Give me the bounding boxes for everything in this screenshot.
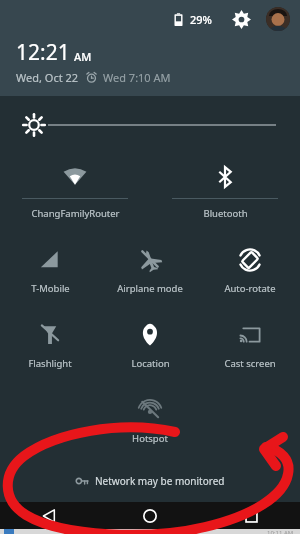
button[interactable]: Back xyxy=(36,503,62,529)
staticText: 12:21 xyxy=(16,38,70,67)
button[interactable]: Hotspot xyxy=(100,384,200,459)
staticText: Cast screen xyxy=(224,357,276,370)
button[interactable]: Auto-rotate xyxy=(200,234,300,309)
button[interactable]: Airplane mode xyxy=(100,234,200,309)
staticText: AM xyxy=(74,49,92,64)
button[interactable]: User profile xyxy=(266,7,290,31)
button[interactable]: Network may be monitored xyxy=(0,459,300,502)
staticText: Airplane mode xyxy=(117,282,183,295)
button[interactable]: Location xyxy=(100,309,200,384)
staticText: Flashlight xyxy=(28,357,72,370)
staticText: Network may be monitored xyxy=(95,474,225,488)
staticText: T-Mobile xyxy=(31,282,70,295)
button[interactable]: Home xyxy=(137,503,163,529)
button[interactable]: Cast screen xyxy=(200,309,300,384)
button[interactable]: ChangFamilyRouter xyxy=(0,154,150,234)
staticText: Bluetooth xyxy=(203,207,248,220)
staticText: Auto-rotate xyxy=(224,282,276,295)
staticText: 29% xyxy=(190,12,212,27)
button[interactable]: Flashlight xyxy=(0,309,100,384)
staticText: 10:11 AM xyxy=(267,529,294,534)
button[interactable]: T-Mobile xyxy=(0,234,100,309)
button[interactable]: Bluetooth xyxy=(150,154,300,234)
button[interactable]: Recent apps xyxy=(238,503,264,529)
staticText: Wed, Oct 22 xyxy=(16,70,79,85)
staticText: ChangFamilyRouter xyxy=(31,207,120,220)
staticText: Location xyxy=(131,357,170,370)
button[interactable]: Settings xyxy=(228,6,254,32)
staticText: Wed 7:10 AM xyxy=(103,70,171,85)
button[interactable]: Brightness xyxy=(24,96,276,154)
staticText: Hotspot xyxy=(132,432,168,445)
